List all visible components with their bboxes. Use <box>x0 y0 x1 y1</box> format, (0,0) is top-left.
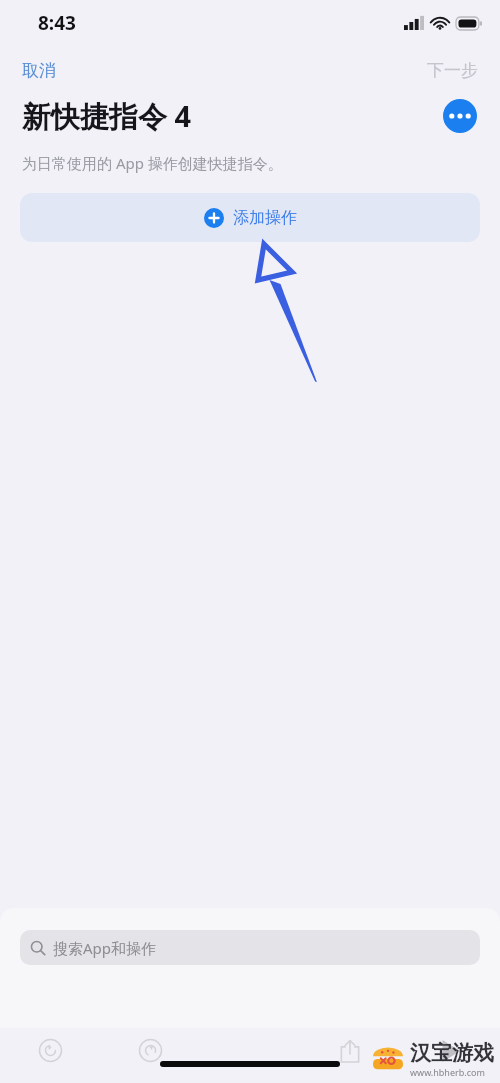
staticText: 添加操作 <box>233 208 297 228</box>
staticText: 取消 <box>22 60 56 81</box>
button[interactable]: 下一步 <box>415 56 490 85</box>
staticText: 下一步 <box>427 60 478 81</box>
button[interactable]: 添加操作 <box>20 193 480 242</box>
staticText: 汉宝游戏 <box>410 1040 494 1066</box>
button[interactable]: Run shortcut <box>400 1028 500 1073</box>
staticText: 搜索App和操作 <box>53 938 157 958</box>
staticText: 新快捷指令 4 <box>22 96 192 136</box>
button[interactable]: More options <box>443 99 477 133</box>
staticText: www.hbherb.com <box>410 1066 485 1078</box>
button[interactable]: Share <box>300 1028 400 1073</box>
button[interactable]: 搜索App和操作 <box>20 930 480 965</box>
button[interactable]: 取消 <box>10 56 68 85</box>
button[interactable]: Undo <box>0 1028 100 1073</box>
staticText: 为日常使用的 App 操作创建快捷指令。 <box>22 153 283 173</box>
staticText: 8:43 <box>38 10 76 36</box>
button[interactable]: Redo <box>100 1028 200 1073</box>
